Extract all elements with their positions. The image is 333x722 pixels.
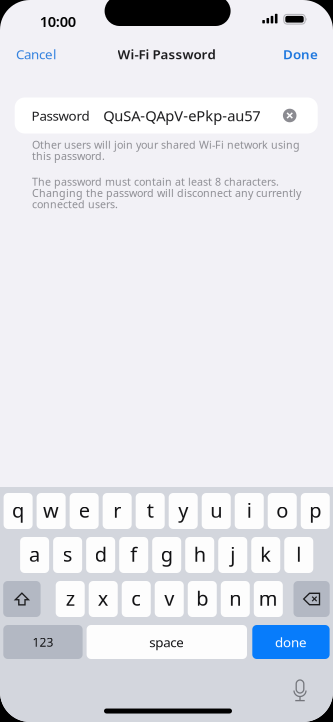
button[interactable]: e: [70, 493, 99, 529]
button[interactable]: Clear text: [278, 97, 302, 133]
staticText: Other users will join your shared Wi-Fi …: [32, 137, 300, 152]
button[interactable]: x: [89, 581, 118, 617]
staticText: f: [130, 541, 137, 567]
button[interactable]: u: [202, 493, 231, 529]
button[interactable]: b: [188, 581, 217, 617]
button[interactable]: q: [4, 493, 33, 529]
button[interactable]: j: [218, 537, 247, 573]
staticText: u: [210, 497, 222, 523]
staticText: m: [259, 585, 278, 611]
staticText: d: [95, 541, 107, 567]
staticText: w: [43, 497, 59, 523]
button[interactable]: p: [301, 493, 330, 529]
staticText: 123: [32, 634, 53, 650]
button[interactable]: v: [155, 581, 184, 617]
staticText: s: [63, 541, 73, 567]
staticText: Wi-Fi Password: [117, 45, 215, 63]
staticText: b: [196, 585, 208, 611]
staticText: Cancel: [16, 45, 56, 63]
staticText: y: [178, 497, 188, 523]
button[interactable]: k: [251, 537, 280, 573]
button[interactable]: y: [169, 493, 198, 529]
button[interactable]: Shift: [3, 581, 41, 617]
staticText: j: [230, 541, 235, 567]
button[interactable]: h: [185, 537, 214, 573]
button[interactable]: m: [254, 581, 283, 617]
staticText: Changing the password will disconnect an…: [32, 186, 301, 200]
button[interactable]: Cancel: [16, 39, 68, 69]
staticText: p: [309, 497, 321, 523]
button[interactable]: l: [284, 537, 313, 573]
staticText: e: [79, 497, 90, 523]
button[interactable]: z: [56, 581, 85, 617]
staticText: v: [164, 585, 174, 611]
button[interactable]: Delete: [293, 581, 330, 617]
button[interactable]: g: [152, 537, 181, 573]
staticText: k: [260, 541, 271, 567]
button[interactable]: i: [235, 493, 264, 529]
staticText: o: [276, 497, 288, 523]
staticText: q: [12, 497, 24, 523]
button[interactable]: Dictate: [284, 675, 316, 707]
staticText: g: [161, 541, 173, 567]
staticText: i: [247, 497, 252, 523]
staticText: r: [113, 497, 121, 523]
button[interactable]: n: [221, 581, 250, 617]
staticText: l: [296, 541, 301, 567]
button[interactable]: a: [20, 537, 49, 573]
button[interactable]: r: [103, 493, 132, 529]
staticText: 10:00: [40, 11, 76, 31]
staticText: z: [66, 585, 75, 611]
button[interactable]: done: [252, 625, 330, 659]
staticText: QuSA-QApV-ePkp-au57: [103, 106, 260, 125]
staticText: Password: [31, 107, 89, 124]
staticText: Done: [283, 45, 318, 63]
staticText: h: [194, 541, 206, 567]
staticText: The password must contain at least 8 cha…: [32, 174, 279, 189]
staticText: a: [29, 541, 40, 567]
staticText: c: [131, 585, 141, 611]
button[interactable]: f: [119, 537, 148, 573]
staticText: space: [149, 633, 184, 651]
button[interactable]: d: [86, 537, 115, 573]
button[interactable]: Done: [270, 39, 318, 69]
button[interactable]: s: [53, 537, 82, 573]
staticText: done: [275, 633, 307, 651]
button[interactable]: t: [136, 493, 165, 529]
button[interactable]: c: [122, 581, 151, 617]
staticText: x: [98, 585, 109, 611]
button[interactable]: o: [268, 493, 297, 529]
staticText: n: [229, 585, 241, 611]
button[interactable]: space: [87, 625, 247, 659]
staticText: t: [147, 497, 154, 523]
staticText: this password.: [32, 149, 105, 163]
button[interactable]: w: [37, 493, 66, 529]
button[interactable]: 123: [3, 625, 83, 659]
staticText: connected users.: [32, 197, 118, 211]
